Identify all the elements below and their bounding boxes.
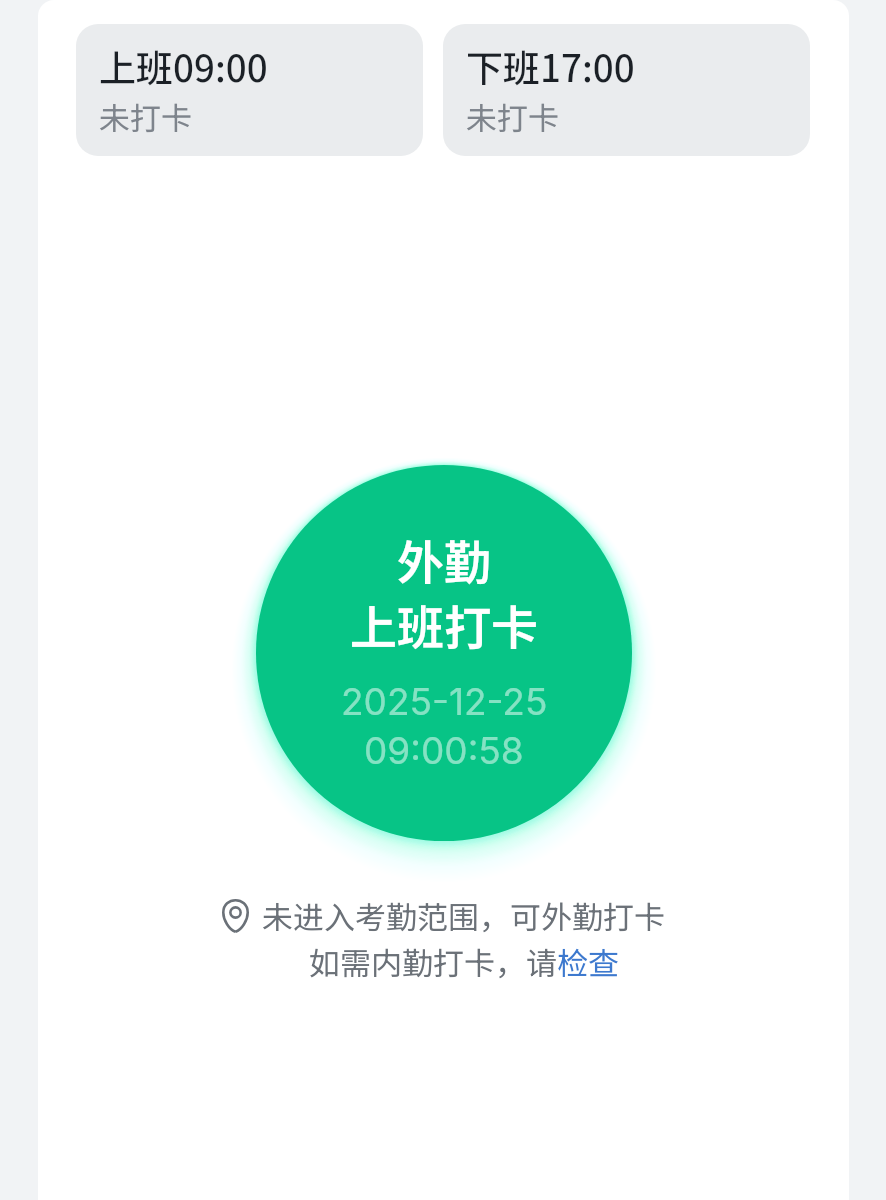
button[interactable]: 检查 [557, 939, 619, 984]
staticText: 上班09:00 [99, 39, 268, 93]
staticText: 外勤 [397, 525, 491, 593]
staticText: 下班17:00 [466, 39, 635, 93]
staticText: 09:00:58 [364, 728, 524, 773]
staticText: 未进入考勤范围，可外勤打卡 [262, 893, 665, 938]
other: Location [222, 899, 249, 933]
staticText: 上班打卡 [350, 590, 538, 658]
staticText: 2025-12-25 [341, 679, 548, 724]
button[interactable]: 上班09:00 [76, 24, 423, 156]
staticText: 未打卡 [466, 94, 559, 139]
button[interactable]: 外勤 [256, 465, 632, 841]
staticText: 如需内勤打卡，请 [309, 939, 557, 984]
staticText: 未打卡 [99, 94, 192, 139]
button[interactable]: 下班17:00 [443, 24, 810, 156]
